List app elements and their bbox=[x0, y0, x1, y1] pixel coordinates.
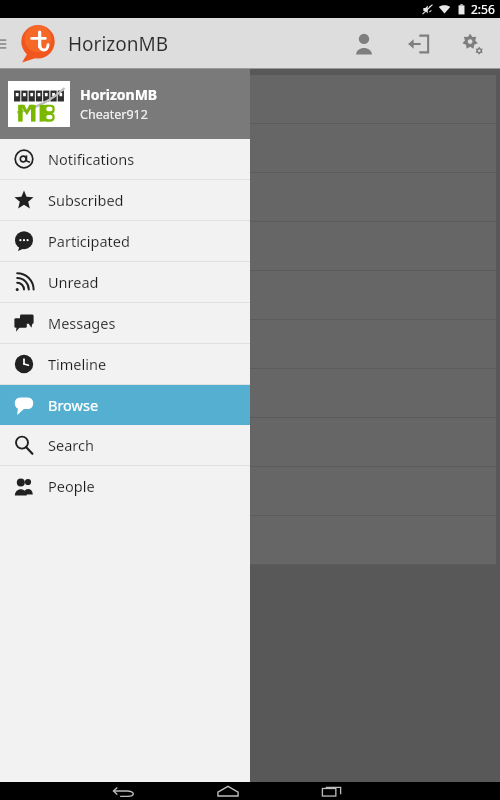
staticText: Cheater912 bbox=[80, 106, 148, 123]
button[interactable]: Participated bbox=[0, 221, 250, 261]
button[interactable]: Timeline bbox=[0, 344, 250, 384]
button[interactable] bbox=[4, 467, 496, 516]
button[interactable] bbox=[4, 320, 496, 369]
staticText: Unread bbox=[48, 272, 99, 292]
button[interactable]: Recent apps bbox=[308, 782, 356, 800]
staticText: Timeline bbox=[48, 354, 107, 374]
button[interactable]: Tapatalk bbox=[18, 24, 58, 64]
button[interactable] bbox=[4, 369, 496, 418]
button[interactable]: Settings bbox=[448, 20, 496, 68]
button[interactable]: Notifications bbox=[0, 139, 250, 179]
button[interactable]: Messages bbox=[0, 303, 250, 343]
staticText: People bbox=[48, 476, 95, 496]
button[interactable]: Unread bbox=[0, 262, 250, 302]
staticText: Search bbox=[48, 435, 94, 455]
button[interactable]: HorizonMB bbox=[0, 69, 250, 139]
button[interactable]: Log out bbox=[394, 20, 442, 68]
button[interactable]: Home bbox=[204, 782, 252, 800]
staticText: HorizonMB bbox=[68, 31, 169, 57]
button[interactable]: Search bbox=[0, 425, 250, 465]
button[interactable] bbox=[4, 173, 496, 222]
button[interactable]: People bbox=[0, 466, 250, 506]
staticText: Messages bbox=[48, 313, 116, 333]
staticText: Participated bbox=[48, 231, 130, 251]
staticText: 2:56 bbox=[471, 1, 495, 17]
staticText: Notifications bbox=[48, 149, 135, 169]
button[interactable]: Back bbox=[100, 782, 148, 800]
button[interactable]: Browse bbox=[0, 385, 250, 425]
button[interactable] bbox=[4, 75, 496, 124]
button[interactable]: Profile bbox=[340, 20, 388, 68]
button[interactable] bbox=[4, 516, 496, 565]
button[interactable]: Open navigation drawer bbox=[0, 18, 14, 69]
button[interactable] bbox=[4, 222, 496, 271]
button[interactable] bbox=[4, 418, 496, 467]
staticText: HorizonMB bbox=[80, 85, 158, 104]
button[interactable] bbox=[4, 124, 496, 173]
staticText: Browse bbox=[48, 395, 99, 415]
staticText: Subscribed bbox=[48, 190, 124, 210]
button[interactable]: Subscribed bbox=[0, 180, 250, 220]
button[interactable] bbox=[4, 271, 496, 320]
